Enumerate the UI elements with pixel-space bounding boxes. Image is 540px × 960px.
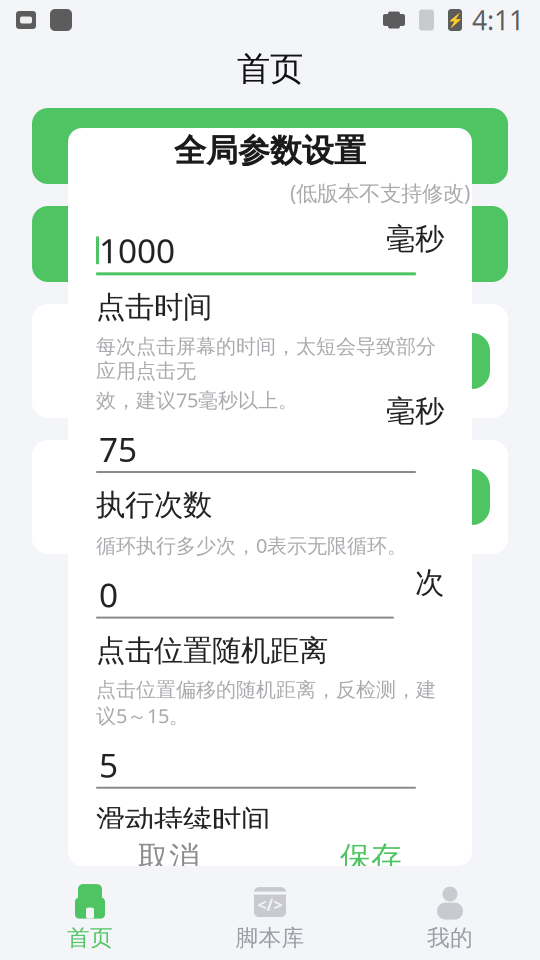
staticText: 全局参数设置 <box>174 131 366 170</box>
staticText: 首页 <box>67 924 113 952</box>
button[interactable]: 取消 <box>68 829 270 887</box>
staticText: 每次点击前的延迟时间，1000毫秒=1秒 <box>96 188 442 214</box>
staticText: 4:11 <box>472 2 524 38</box>
staticText: 执行次数 <box>96 487 212 523</box>
staticText: 毫秒 <box>386 221 444 257</box>
staticText: 点击时间 <box>96 289 212 325</box>
staticText: 1000 <box>99 228 175 272</box>
staticText: 次 <box>415 565 444 601</box>
staticText: 首页 <box>237 48 303 89</box>
staticText: 取消 <box>138 839 200 877</box>
button[interactable]: </> <box>180 876 360 960</box>
button[interactable]: 保存 <box>270 829 472 887</box>
staticText: 毫秒 <box>386 393 444 429</box>
staticText: 点击位置偏移的随机距离，反检测，建议5～15。 <box>96 678 436 729</box>
staticText: 效，建议75毫秒以上。 <box>96 386 298 413</box>
button[interactable]: 首页 <box>0 876 180 960</box>
staticText: 我的 <box>427 924 473 952</box>
staticText: </> <box>257 894 282 915</box>
staticText: 每次点击屏幕的时间，太短会导致部分应用点击无 <box>96 334 436 383</box>
staticText: (低版本不支持修改) <box>290 178 470 207</box>
staticText: 75 <box>99 427 137 471</box>
button[interactable]: 我的 <box>360 876 540 960</box>
staticText: 5 <box>99 743 118 787</box>
staticText: 循环执行多少次，0表示无限循环。 <box>96 532 407 559</box>
staticText: 滑动的持续时间，一般在300～500毫秒效果会好一 <box>96 848 442 899</box>
staticText: 滑动持续时间 <box>96 803 270 839</box>
staticText: 脚本库 <box>235 924 304 952</box>
staticText: 点击位置随机距离 <box>96 633 328 669</box>
staticText: 保存 <box>340 839 402 877</box>
staticText: 延迟时间 <box>96 143 212 179</box>
staticText: 0 <box>99 572 118 617</box>
staticText: ⚡ <box>446 12 463 28</box>
